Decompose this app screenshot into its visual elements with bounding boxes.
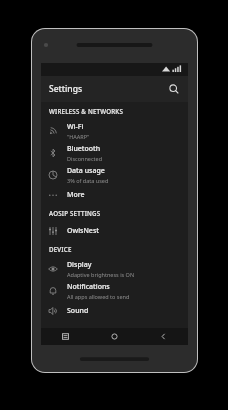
staticText: Settings [49, 83, 83, 95]
staticText: Bluetooth [67, 144, 101, 154]
button[interactable]: Notifications [41, 280, 188, 302]
button[interactable]: Sound [41, 302, 188, 320]
staticText: Disconnected [67, 155, 103, 162]
button[interactable]: Recents [41, 328, 90, 345]
staticText: Data usage [67, 166, 105, 176]
staticText: Sound [67, 306, 89, 316]
button[interactable]: Wi-Fi [41, 120, 188, 142]
staticText: More [67, 190, 85, 200]
staticText: Display [67, 260, 92, 270]
button[interactable]: Back [139, 328, 188, 345]
button[interactable]: More [41, 186, 188, 204]
button[interactable]: Search [165, 80, 183, 98]
staticText: Wi-Fi [67, 122, 84, 132]
staticText: All apps allowed to send [67, 293, 130, 300]
staticText: DEVICE [49, 245, 72, 253]
staticText: "HAARP" [67, 133, 90, 140]
button[interactable]: Display [41, 258, 188, 280]
button[interactable]: OwlsNest [41, 222, 188, 240]
staticText: WIRELESS & NETWORKS [49, 107, 124, 115]
staticText: AOSIP SETTINGS [49, 209, 101, 217]
staticText: 3% of data used [67, 177, 109, 184]
staticText: Notifications [67, 282, 110, 292]
button[interactable]: Data usage [41, 164, 188, 186]
button[interactable]: Home [90, 328, 139, 345]
staticText: OwlsNest [67, 226, 99, 236]
staticText: Adaptive brightness is ON [67, 271, 135, 278]
button[interactable]: Bluetooth [41, 142, 188, 164]
